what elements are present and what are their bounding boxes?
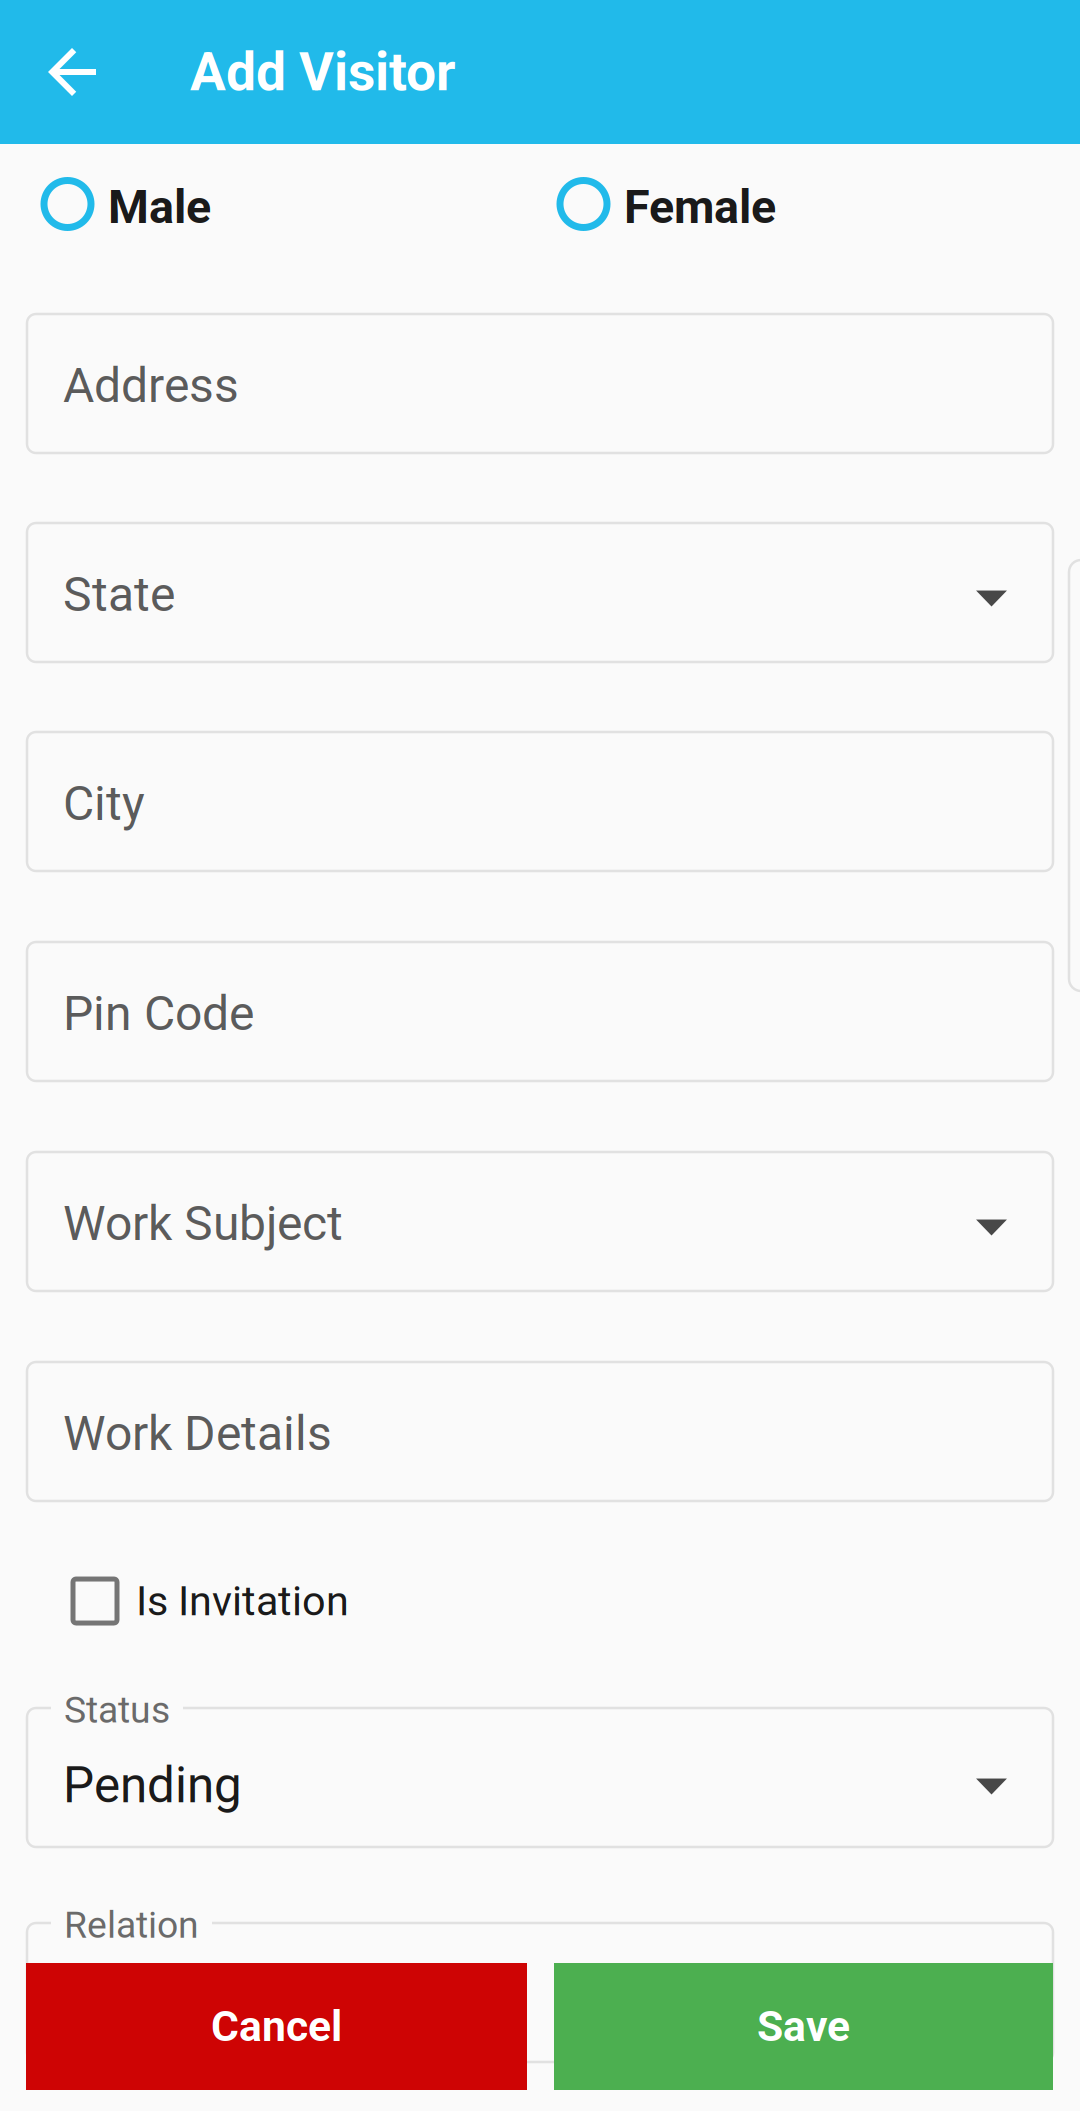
- button[interactable]: Is Invitation: [73, 1571, 349, 1631]
- button[interactable]: Female: [560, 174, 776, 234]
- staticText: Work Subject: [63, 1195, 343, 1252]
- button[interactable]: Male: [44, 174, 211, 234]
- staticText: State: [63, 566, 175, 623]
- staticText: Is Invitation: [136, 1577, 349, 1625]
- staticText: City: [63, 775, 145, 832]
- staticText: Relation: [64, 1903, 199, 1947]
- button[interactable]: Relation: [27, 1923, 1053, 2062]
- button[interactable]: Address: [27, 314, 1053, 453]
- button[interactable]: Back: [0, 0, 144, 144]
- button[interactable]: Status: [27, 1708, 1053, 1847]
- staticText: Status: [64, 1688, 170, 1732]
- staticText: Work Details: [63, 1405, 332, 1462]
- staticText: Address: [63, 357, 239, 414]
- button[interactable]: Pin Code: [27, 942, 1053, 1081]
- button[interactable]: Save: [554, 1963, 1053, 2090]
- staticText: Pending: [63, 1757, 242, 1814]
- button[interactable]: Work Subject: [27, 1152, 1053, 1291]
- staticText: Add Visitor: [190, 41, 456, 103]
- staticText: Pin Code: [63, 985, 254, 1042]
- staticText: Save: [757, 2001, 850, 2051]
- button[interactable]: City: [27, 732, 1053, 871]
- staticText: Female: [624, 180, 776, 234]
- staticText: Male: [108, 180, 211, 234]
- button[interactable]: Work Details: [27, 1362, 1053, 1501]
- button[interactable]: Cancel: [26, 1963, 527, 2090]
- button[interactable]: State: [27, 523, 1053, 662]
- staticText: Cancel: [211, 2001, 342, 2051]
